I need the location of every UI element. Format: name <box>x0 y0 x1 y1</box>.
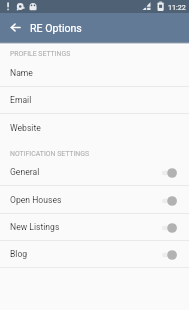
staticText: Website <box>10 123 41 133</box>
button[interactable]: Name <box>0 60 189 87</box>
staticText: PROFILE SETTINGS <box>10 50 71 58</box>
staticText: 11:22 <box>168 3 186 11</box>
staticText: Name <box>10 68 33 78</box>
button[interactable]: Back <box>5 17 26 38</box>
staticText: General <box>10 167 40 177</box>
button[interactable]: New Listings <box>0 214 189 241</box>
staticText: NOTIFICATION SETTINGS <box>10 150 90 158</box>
staticText: RE Options <box>30 22 82 34</box>
staticText: Open Houses <box>10 195 62 205</box>
button[interactable]: General <box>0 159 189 186</box>
button[interactable]: Website <box>0 115 189 142</box>
staticText: Email <box>10 95 32 105</box>
button[interactable]: Open Houses <box>0 187 189 214</box>
button[interactable]: Email <box>0 87 189 114</box>
button[interactable]: Blog <box>0 241 189 268</box>
staticText: Blog <box>10 249 28 259</box>
staticText: New Listings <box>10 222 60 232</box>
